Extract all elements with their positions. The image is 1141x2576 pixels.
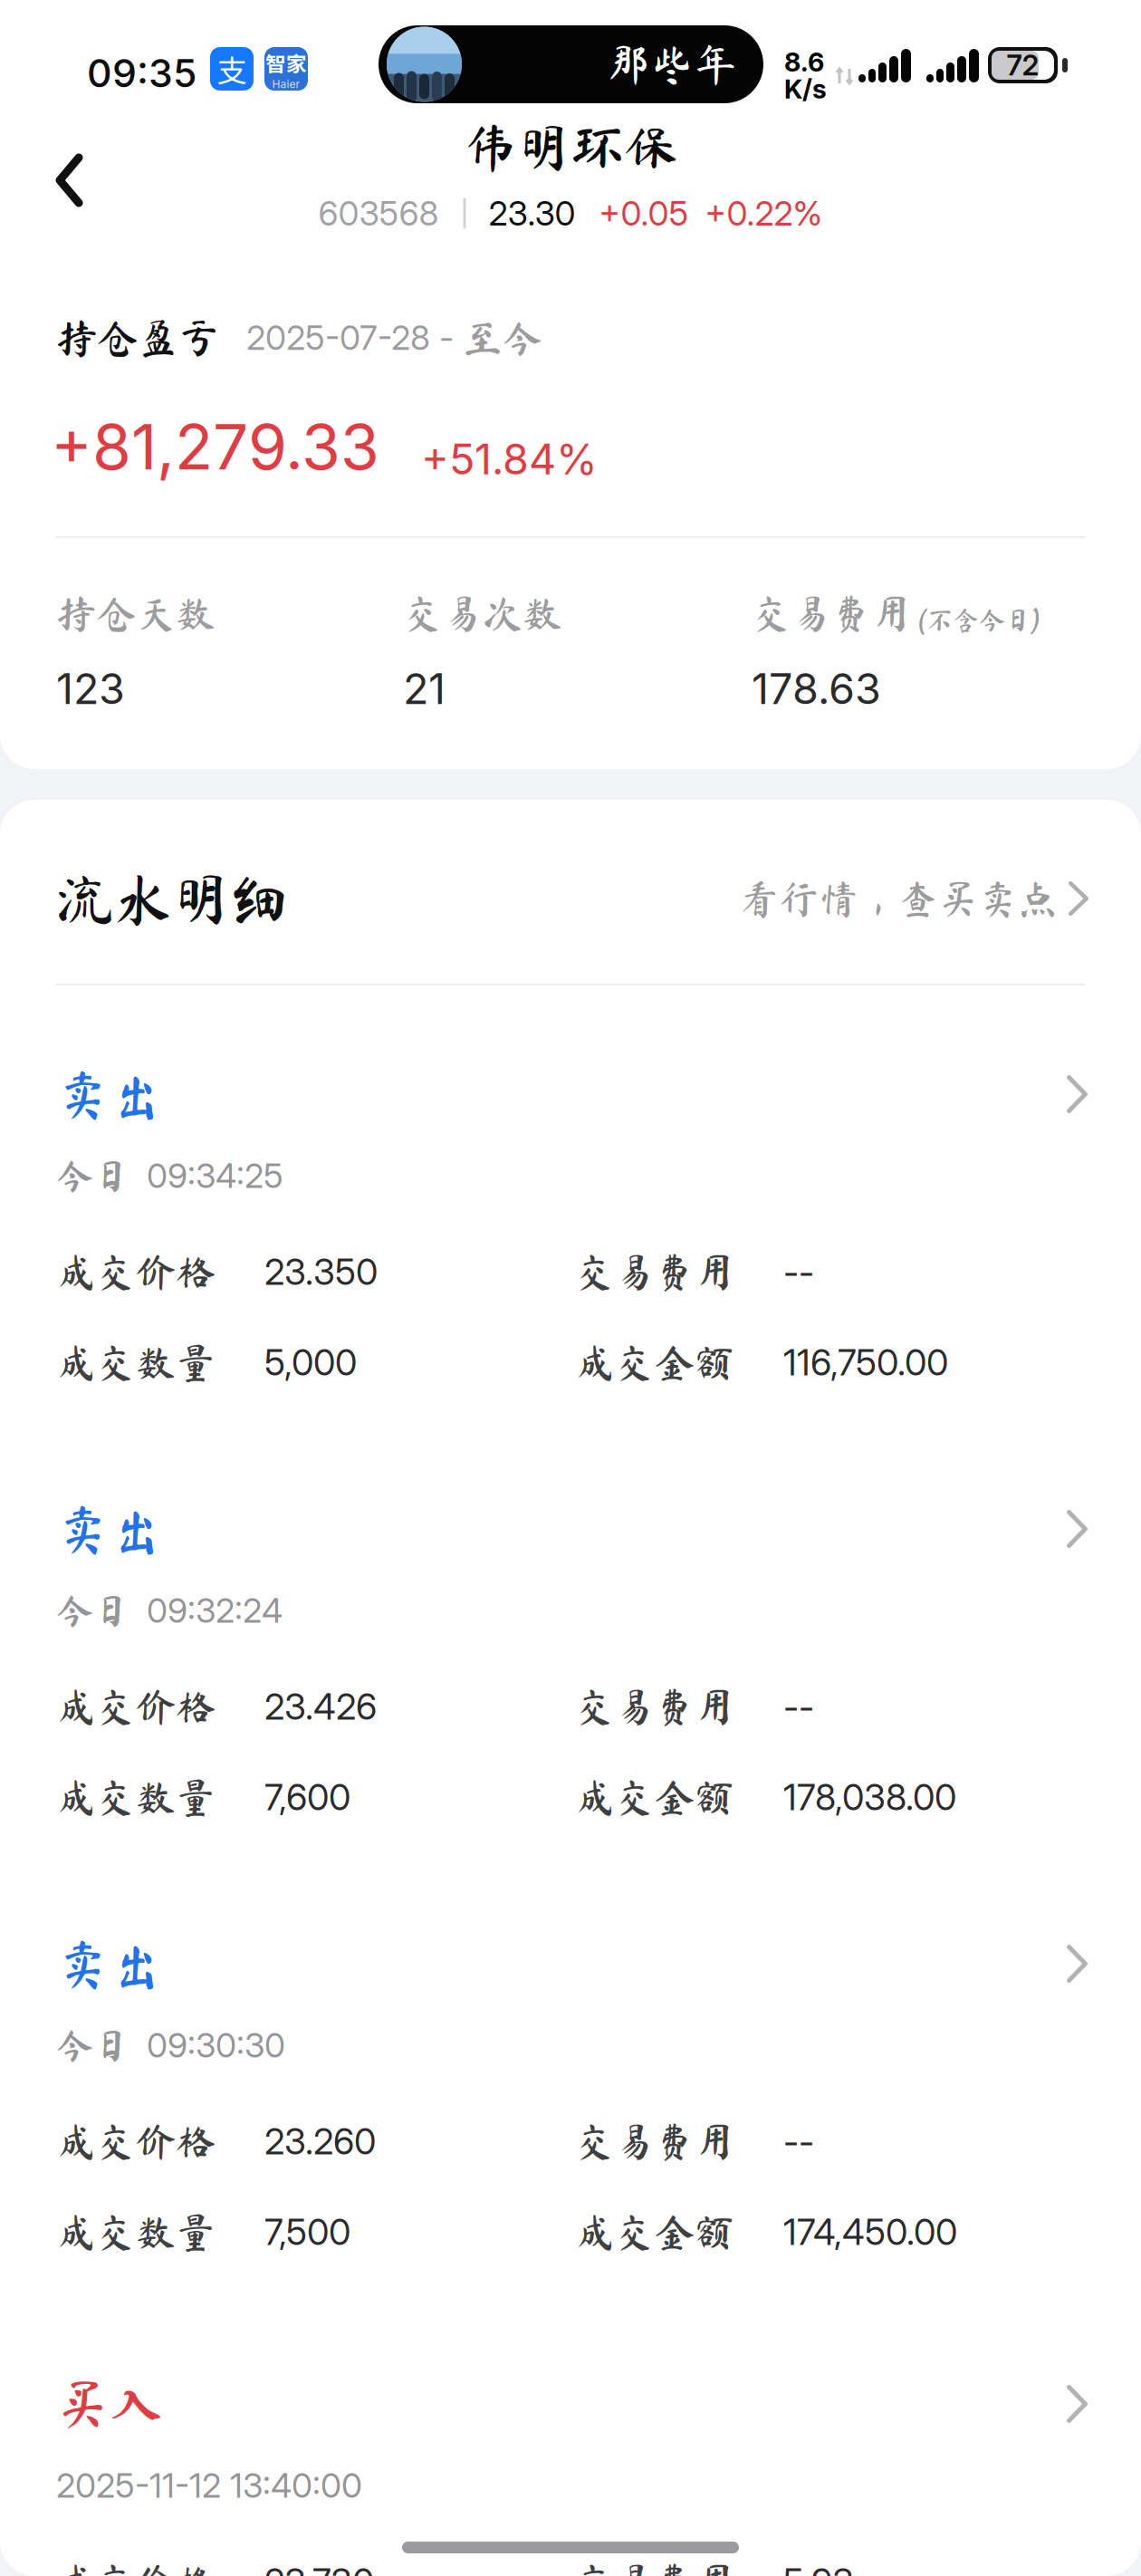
staticText: 8.6 — [784, 46, 824, 78]
staticText: 5.93 — [783, 2560, 854, 2576]
staticText: 09:35 — [87, 50, 197, 97]
button[interactable]: 流水明细 — [0, 862, 1141, 935]
button[interactable]: 买入 — [0, 2371, 1141, 2576]
staticText: 09:34:25 — [147, 1155, 283, 1196]
staticText: -- — [783, 1250, 814, 1293]
staticText: 72 — [1007, 48, 1039, 82]
staticText: 持仓盈亏 — [56, 317, 219, 358]
staticText: +0.05 — [599, 193, 689, 234]
staticText: 交易次数 — [403, 593, 562, 633]
staticText: 持仓天数 — [56, 593, 216, 633]
staticText: 174,450.00 — [783, 2210, 957, 2253]
staticText: (不含今日) — [917, 607, 1040, 633]
staticText: 178.63 — [752, 663, 881, 714]
staticText: 21 — [403, 663, 446, 714]
staticText: 23.350 — [264, 1250, 378, 1293]
staticText: K/s — [784, 73, 827, 105]
staticText: 今日 — [56, 2026, 130, 2064]
staticText: 成交金额 — [575, 1342, 734, 1382]
staticText: 交易费用 — [575, 1687, 734, 1726]
staticText: 23.730 — [264, 2560, 374, 2576]
staticText: 116,750.00 — [783, 1341, 948, 1384]
staticText: +51.84% — [421, 433, 598, 484]
staticText: 成交价格 — [56, 2121, 216, 2161]
staticText: 603568 — [318, 193, 439, 234]
staticText: 成交数量 — [56, 2212, 216, 2252]
staticText: 成交金额 — [575, 2212, 734, 2252]
staticText: 123 — [56, 663, 125, 714]
staticText: 交易费用 — [575, 2562, 734, 2576]
staticText: 成交价格 — [56, 1252, 216, 1292]
button[interactable]: Back — [44, 142, 94, 218]
staticText: 23.260 — [264, 2119, 376, 2163]
staticText: 交易费用 — [575, 1252, 734, 1292]
staticText: 2025-11-12 13:40:00 — [56, 2465, 362, 2506]
staticText: 交易费用 — [752, 593, 911, 633]
staticText: 成交数量 — [56, 1342, 216, 1382]
staticText: 23.30 — [489, 193, 575, 234]
staticText: 买入 — [56, 2377, 163, 2431]
staticText: +0.22% — [705, 193, 823, 234]
staticText: 5,000 — [264, 1341, 357, 1384]
staticText: 今日 — [56, 1157, 130, 1194]
button[interactable]: 卖出 — [0, 1931, 1141, 2254]
staticText: 今日 — [56, 1592, 130, 1629]
staticText: 流水明细 — [56, 870, 288, 928]
staticText: 成交数量 — [56, 1777, 216, 1817]
staticText: 交易费用 — [575, 2121, 734, 2161]
staticText: 卖出 — [56, 1068, 163, 1121]
staticText: 23.426 — [264, 1685, 377, 1728]
staticText: 看行情，查买卖点 — [739, 879, 1058, 918]
staticText: +81,279.33 — [51, 409, 379, 484]
staticText: 7,500 — [264, 2210, 350, 2253]
staticText: 7,600 — [264, 1775, 350, 1819]
button[interactable]: 卖出 — [0, 1496, 1141, 1819]
staticText: 成交金额 — [575, 1777, 734, 1817]
staticText: 那些年 — [607, 43, 737, 86]
staticText: 至今 — [463, 318, 542, 358]
staticText: 成交价格 — [56, 1687, 216, 1726]
staticText: Haier — [272, 78, 300, 91]
staticText: -- — [783, 2119, 814, 2163]
staticText: 智家 — [265, 48, 307, 78]
staticText: 支 — [217, 47, 247, 91]
staticText: 卖出 — [56, 1937, 163, 1990]
staticText: 09:30:30 — [147, 2025, 285, 2066]
staticText: 伟明环保 — [464, 120, 677, 174]
button[interactable]: 卖出 — [0, 1062, 1141, 1384]
staticText: 成交价格 — [56, 2562, 216, 2576]
staticText: 2025-07-28 - — [246, 317, 463, 358]
staticText: 09:32:24 — [147, 1590, 283, 1631]
staticText: 178,038.00 — [783, 1775, 956, 1819]
staticText: -- — [783, 1685, 814, 1728]
staticText: 卖出 — [56, 1502, 163, 1556]
